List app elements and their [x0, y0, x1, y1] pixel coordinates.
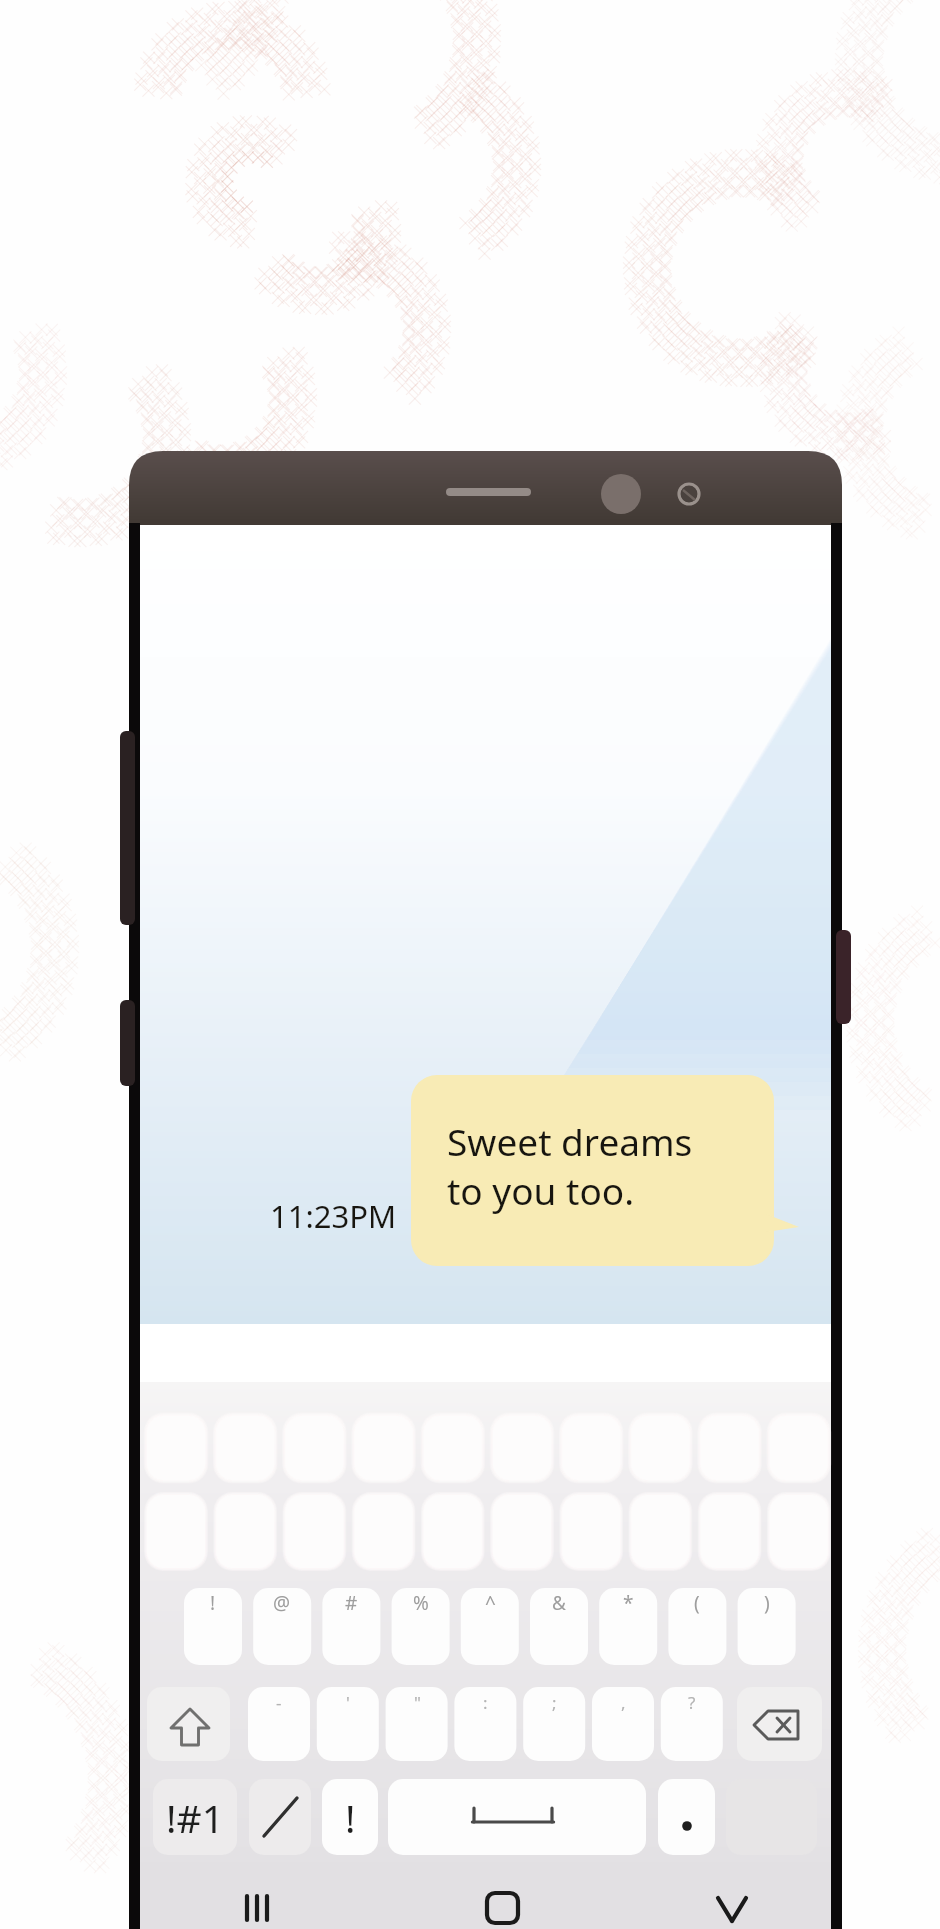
- staticText: @: [273, 1590, 291, 1616]
- button[interactable]: z: [248, 1687, 310, 1761]
- button[interactable]: f: [392, 1588, 450, 1665]
- staticText: #: [345, 1590, 358, 1616]
- button[interactable]: Hide keyboard: [675, 1869, 790, 1929]
- staticText: Sweet dreams: [447, 1116, 693, 1166]
- staticText: ,: [621, 1691, 626, 1714]
- button[interactable]: d: [322, 1588, 380, 1665]
- button[interactable]: h: [530, 1588, 588, 1665]
- button[interactable]: g: [461, 1588, 519, 1665]
- button[interactable]: s: [253, 1588, 311, 1665]
- button[interactable]: Symbols: [153, 1779, 237, 1855]
- staticText: (: [694, 1590, 700, 1616]
- staticText: &: [552, 1590, 566, 1616]
- button[interactable]: Backspace: [737, 1687, 822, 1761]
- button[interactable]: Space: [388, 1779, 646, 1855]
- button[interactable]: n: [592, 1687, 654, 1761]
- staticText: *: [623, 1590, 634, 1616]
- button[interactable]: Recent apps: [200, 1869, 315, 1929]
- button[interactable]: Slash: [249, 1779, 311, 1855]
- staticText: ": [414, 1691, 421, 1714]
- button[interactable]: m: [661, 1687, 723, 1761]
- staticText: -: [276, 1691, 282, 1714]
- staticText: 11:23PM: [270, 1195, 397, 1237]
- button[interactable]: Home: [445, 1869, 560, 1929]
- button[interactable]: Period: [658, 1779, 715, 1855]
- button[interactable]: x: [317, 1687, 379, 1761]
- button[interactable]: j: [599, 1588, 657, 1665]
- button[interactable]: k: [668, 1588, 726, 1665]
- staticText: %: [413, 1590, 429, 1616]
- button[interactable]: v: [454, 1687, 516, 1761]
- staticText: !: [345, 1791, 356, 1844]
- staticText: !#1: [166, 1791, 224, 1844]
- staticText: ): [764, 1590, 770, 1616]
- staticText: ': [346, 1691, 350, 1714]
- staticText: to you too.: [447, 1165, 635, 1215]
- button[interactable]: c: [386, 1687, 448, 1761]
- button[interactable]: Shift: [147, 1687, 230, 1761]
- staticText: :: [483, 1691, 488, 1714]
- button[interactable]: b: [523, 1687, 585, 1761]
- button[interactable]: Exclamation mark: [322, 1779, 378, 1855]
- button[interactable]: [411, 1075, 774, 1266]
- staticText: ;: [552, 1691, 557, 1714]
- button[interactable]: a: [184, 1588, 242, 1665]
- button[interactable]: l: [738, 1588, 796, 1665]
- staticText: !: [210, 1590, 216, 1616]
- staticText: ^: [485, 1590, 496, 1616]
- staticText: ?: [688, 1691, 696, 1714]
